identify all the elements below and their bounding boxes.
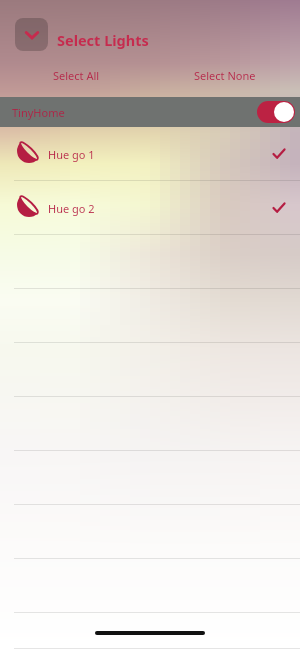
staticText: Select None [194, 68, 256, 83]
button[interactable]: Select All [36, 61, 117, 89]
staticText: Hue go 2 [48, 201, 95, 216]
staticText: Select Lights [57, 30, 149, 50]
button[interactable]: Collapse [15, 18, 48, 51]
staticText: Select All [53, 68, 100, 83]
button[interactable]: Hue go 1 [0, 127, 300, 181]
button[interactable]: Hue go 2 [0, 181, 300, 235]
button[interactable]: Toggle TinyHome [257, 101, 295, 123]
staticText: Hue go 1 [48, 147, 95, 162]
button[interactable]: Select None [185, 61, 265, 89]
staticText: TinyHome [12, 105, 65, 120]
